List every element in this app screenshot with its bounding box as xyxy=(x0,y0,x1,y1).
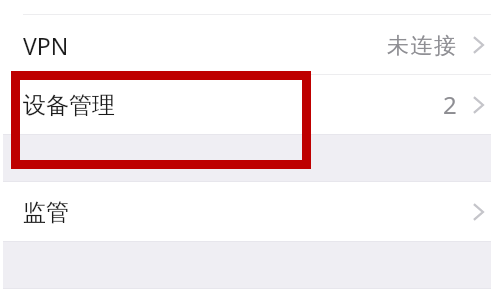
button[interactable]: VPN xyxy=(0,15,491,74)
staticText: 监管 xyxy=(23,198,69,227)
other: Open 设备管理 xyxy=(473,95,484,115)
other: Highlight xyxy=(11,71,311,169)
staticText: 未连接 xyxy=(387,32,458,60)
staticText: 2 xyxy=(443,88,457,121)
other: Open 监管 xyxy=(473,202,484,222)
button[interactable]: 设备管理 xyxy=(0,75,491,134)
staticText: VPN xyxy=(23,30,69,61)
staticText: 设备管理 xyxy=(23,91,115,120)
other: Open VPN xyxy=(473,35,484,55)
button[interactable]: 监管 xyxy=(0,182,491,241)
